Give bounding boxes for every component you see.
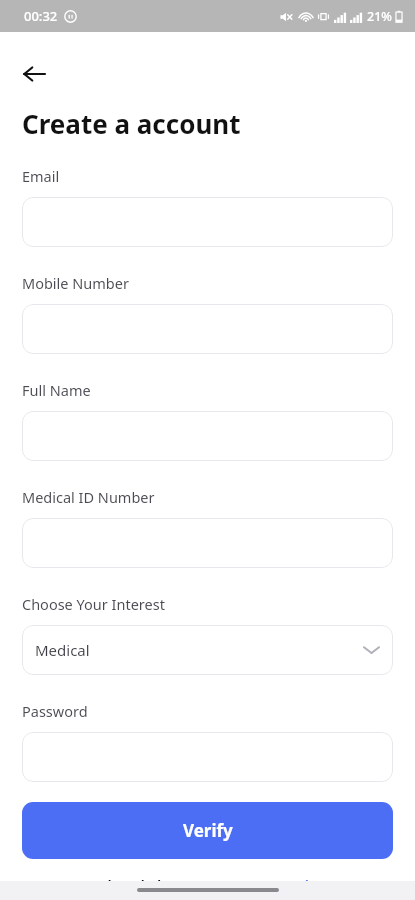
button[interactable]: Already have a account? Login (22, 875, 393, 881)
staticText: Create a account (22, 106, 241, 141)
staticText: Email (22, 166, 60, 186)
staticText: Full Name (22, 380, 91, 400)
staticText: Medical ID Number (22, 487, 155, 507)
button[interactable] (22, 732, 393, 782)
button[interactable] (22, 518, 393, 568)
staticText: 00:32 (24, 7, 58, 25)
button[interactable]: Back (14, 54, 54, 94)
staticText: Password (22, 701, 88, 721)
button[interactable] (22, 304, 393, 354)
staticText: 21% (367, 8, 392, 25)
staticText: Medical (35, 640, 90, 660)
staticText: Verify (183, 819, 233, 842)
button[interactable] (22, 197, 393, 247)
button[interactable]: Verify (22, 802, 393, 859)
staticText: Mobile Number (22, 273, 129, 293)
staticText: Choose Your Interest (22, 594, 165, 614)
button[interactable] (22, 411, 393, 461)
staticText: Already have a account? Login (97, 875, 319, 881)
button[interactable]: Medical (22, 625, 393, 675)
